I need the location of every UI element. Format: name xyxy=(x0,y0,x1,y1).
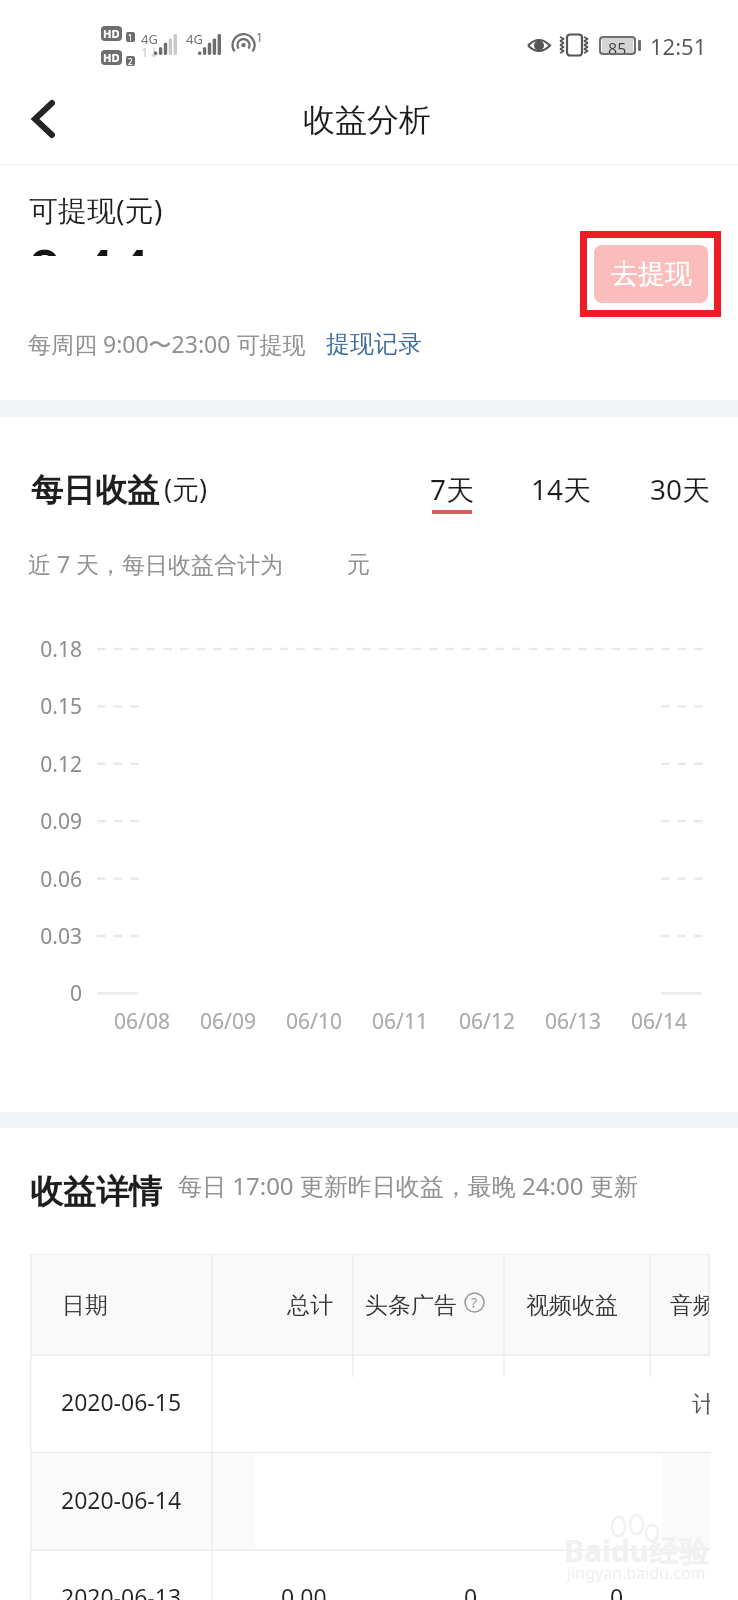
staticText: 元 xyxy=(347,550,370,579)
button[interactable]: Back xyxy=(14,90,72,148)
staticText: 音频收益 xyxy=(670,1291,710,1320)
staticText: 0.06 xyxy=(21,865,82,894)
staticText: 每日 17:00 更新昨日收益，最晚 24:00 更新 xyxy=(178,1169,638,1202)
staticText: 2 xyxy=(128,56,133,66)
staticText: 0 xyxy=(610,1581,624,1600)
staticText: 0 xyxy=(464,1581,478,1600)
staticText: 计 xyxy=(692,1390,710,1419)
staticText: 0 xyxy=(21,979,82,1008)
staticText: 7天 xyxy=(430,470,475,508)
staticText: HD xyxy=(103,26,120,41)
staticText: 06/08 xyxy=(97,1007,187,1036)
staticText: 0.09 xyxy=(21,807,82,836)
staticText: 2020-06-14 xyxy=(61,1484,182,1515)
staticText: 0.12 xyxy=(21,750,82,779)
staticText: 14天 xyxy=(531,470,592,508)
staticText: 0.00 xyxy=(281,1581,327,1600)
staticText: 0.03 xyxy=(21,922,82,951)
staticText: 2020-06-15 xyxy=(61,1386,182,1417)
staticText: 1 xyxy=(256,29,263,45)
staticText: jingyan.baidu.com xyxy=(567,1562,706,1584)
staticText: 可提现(元) xyxy=(29,190,163,230)
button[interactable]: 30天 xyxy=(642,462,714,520)
staticText: 06/12 xyxy=(442,1007,532,1036)
staticText: 1↓ xyxy=(141,43,160,61)
button[interactable]: 7天 xyxy=(422,462,479,520)
staticText: 06/09 xyxy=(183,1007,273,1036)
staticText: 4G xyxy=(186,30,203,48)
staticText: 去提现 xyxy=(611,257,692,291)
staticText: 近 7 天，每日收益合计为 xyxy=(28,548,284,579)
staticText: 2020-06-13 xyxy=(61,1581,182,1600)
staticText: 每日收益 xyxy=(31,470,159,510)
staticText: 4G xyxy=(141,30,158,48)
button[interactable]: 14天 xyxy=(523,462,594,520)
staticText: 收益分析 xyxy=(303,100,431,140)
staticText: 06/13 xyxy=(528,1007,618,1036)
button[interactable]: 提现记录 xyxy=(326,329,422,359)
staticText: 30天 xyxy=(650,470,711,508)
other: Eye comfort xyxy=(527,36,551,55)
staticText: ? xyxy=(471,1293,478,1312)
other: Hotspot xyxy=(231,33,256,55)
staticText: 提现记录 xyxy=(326,329,422,359)
staticText: 06/11 xyxy=(355,1007,445,1036)
staticText: (元) xyxy=(164,470,208,507)
staticText: HD xyxy=(103,50,120,65)
staticText: 12:51 xyxy=(650,31,707,61)
staticText: 0.44 xyxy=(27,249,151,256)
staticText: Baidu经验 xyxy=(564,1530,710,1571)
staticText: 06/14 xyxy=(614,1007,704,1036)
staticText: 85 xyxy=(608,38,627,53)
staticText: 视频收益 xyxy=(526,1291,618,1320)
staticText: 头条广告 xyxy=(365,1291,457,1320)
staticText: 0.18 xyxy=(21,635,82,664)
staticText: 每周四 9:00〜23:00 可提现 xyxy=(28,328,306,359)
staticText: 总计 xyxy=(287,1291,333,1320)
staticText: 06/10 xyxy=(269,1007,359,1036)
staticText: 0.15 xyxy=(21,692,82,721)
staticText: 1 xyxy=(128,32,133,42)
button[interactable]: 去提现 xyxy=(594,245,708,303)
staticText: 收益详情 xyxy=(30,1171,162,1213)
staticText: 日期 xyxy=(62,1291,108,1320)
